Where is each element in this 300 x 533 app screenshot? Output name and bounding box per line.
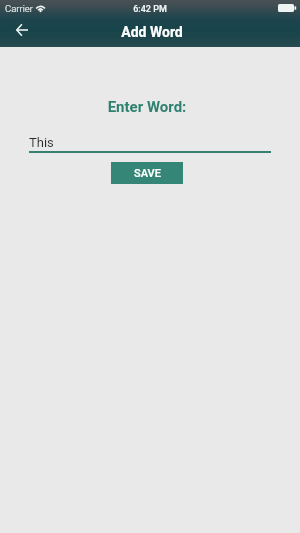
staticText: SAVE xyxy=(134,167,161,180)
button[interactable]: Back xyxy=(9,19,34,41)
staticText: Carrier xyxy=(5,3,33,14)
button[interactable]: Enter word text field xyxy=(29,131,271,153)
staticText: 6:42 PM xyxy=(0,4,300,15)
staticText: This xyxy=(29,135,54,150)
staticText: Add Word xyxy=(2,24,300,40)
button[interactable]: SAVE xyxy=(111,162,183,184)
staticText: Enter Word: xyxy=(0,98,297,116)
